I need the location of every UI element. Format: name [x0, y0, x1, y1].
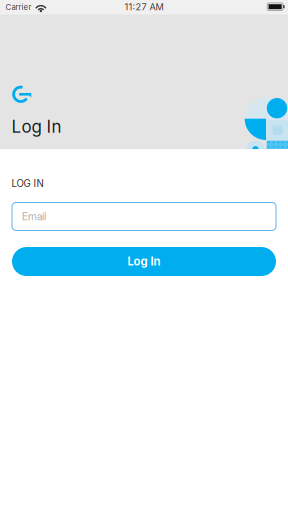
staticText: Log In — [11, 116, 61, 137]
staticText: Log In — [127, 255, 160, 268]
staticText: 11:27 AM — [124, 1, 163, 12]
staticText: Email — [22, 210, 46, 223]
staticText: Carrier — [5, 2, 31, 12]
staticText: LOG IN — [11, 178, 43, 189]
button[interactable]: Log In — [12, 247, 276, 276]
